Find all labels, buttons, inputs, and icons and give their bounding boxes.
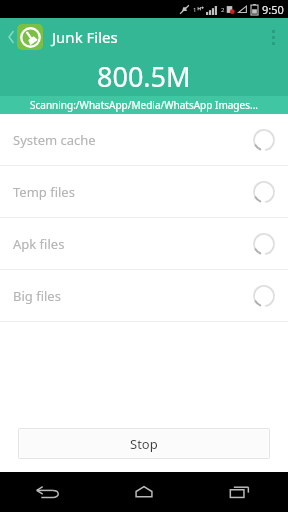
staticText: Scanning:/WhatsApp/Media/WhatsApp Images… — [30, 98, 258, 112]
staticText: Junk Files — [52, 27, 118, 47]
staticText: System cache — [13, 131, 96, 149]
button[interactable]: Home — [96, 472, 192, 512]
button[interactable]: More options — [258, 18, 288, 56]
button[interactable]: Big files — [0, 270, 288, 321]
staticText: 1 — [193, 6, 197, 14]
staticText: Temp files — [13, 183, 75, 201]
button[interactable]: Stop — [18, 428, 270, 459]
button[interactable]: System cache — [0, 114, 288, 165]
staticText: 800.5M — [97, 58, 191, 95]
button[interactable]: Back — [0, 472, 96, 512]
staticText: Apk files — [13, 235, 65, 253]
button[interactable]: Apk files — [0, 218, 288, 269]
staticText: 9:50 — [262, 2, 284, 17]
staticText: 2 — [221, 6, 225, 14]
staticText: Stop — [130, 435, 158, 453]
button[interactable]: Back — [4, 21, 17, 53]
button[interactable]: Temp files — [0, 166, 288, 217]
button[interactable]: Recent apps — [192, 472, 288, 512]
staticText: Big files — [13, 287, 61, 305]
